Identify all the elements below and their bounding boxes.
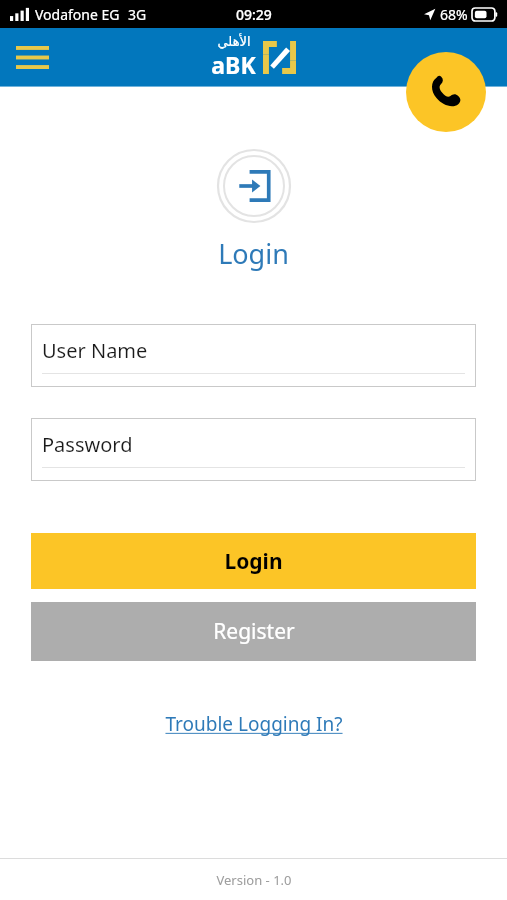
staticText: Version - 1.0 bbox=[216, 871, 292, 889]
button[interactable]: Login bbox=[31, 533, 476, 589]
button[interactable]: Password bbox=[31, 418, 476, 481]
staticText: 09:29 bbox=[236, 5, 272, 24]
staticText: User Name bbox=[42, 337, 148, 364]
button[interactable]: Trouble Logging In? bbox=[155, 707, 353, 741]
button[interactable]: User Name bbox=[31, 324, 476, 387]
button[interactable]: Register bbox=[31, 602, 476, 661]
staticText: Vodafone EG bbox=[35, 5, 120, 24]
staticText: الأهلي bbox=[217, 34, 251, 49]
staticText: Login bbox=[0, 235, 507, 272]
button[interactable]: Call bbox=[406, 52, 486, 132]
staticText: 68% bbox=[440, 5, 468, 24]
staticText: Password bbox=[42, 431, 133, 458]
staticText: aBK bbox=[211, 49, 256, 80]
staticText: Trouble Logging In? bbox=[165, 711, 343, 737]
staticText: Login bbox=[224, 547, 283, 576]
staticText: Register bbox=[213, 617, 295, 646]
button[interactable]: Menu bbox=[10, 35, 54, 79]
staticText: 3G bbox=[128, 5, 147, 24]
